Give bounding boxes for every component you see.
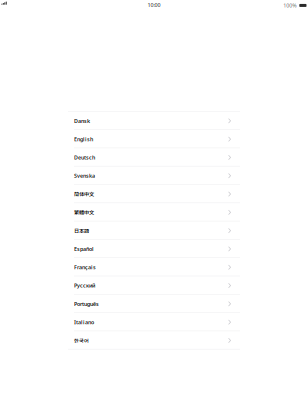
button[interactable]: Português bbox=[68, 295, 240, 312]
staticText: Deutsch bbox=[74, 154, 95, 161]
staticText: 繁體中文 bbox=[74, 209, 94, 216]
staticText: Português bbox=[74, 300, 99, 307]
button[interactable]: Dansk bbox=[68, 112, 240, 129]
staticText: Français bbox=[74, 264, 96, 271]
button[interactable]: Italiano bbox=[68, 313, 240, 331]
staticText: 100% bbox=[283, 2, 296, 9]
button[interactable]: 한국어 bbox=[68, 331, 240, 349]
staticText: Русский bbox=[74, 282, 95, 289]
staticText: Español bbox=[74, 245, 94, 252]
button[interactable]: Español bbox=[68, 240, 240, 257]
staticText: English bbox=[74, 136, 93, 143]
staticText: Svenska bbox=[74, 172, 95, 179]
staticText: 한국어 bbox=[74, 337, 89, 344]
button[interactable]: Deutsch bbox=[68, 148, 240, 166]
staticText: 日本語 bbox=[74, 227, 89, 234]
staticText: Italiano bbox=[74, 319, 94, 326]
button[interactable]: Русский bbox=[68, 276, 240, 294]
button[interactable]: 繁體中文 bbox=[68, 203, 240, 221]
button[interactable]: Français bbox=[68, 258, 240, 276]
button[interactable]: 日本語 bbox=[68, 221, 240, 239]
staticText: 10:00 bbox=[147, 1, 160, 8]
button[interactable]: 简体中文 bbox=[68, 185, 240, 202]
staticText: Dansk bbox=[74, 117, 90, 124]
button[interactable]: English bbox=[68, 130, 240, 148]
staticText: 简体中文 bbox=[74, 190, 94, 198]
button[interactable]: Svenska bbox=[68, 166, 240, 184]
